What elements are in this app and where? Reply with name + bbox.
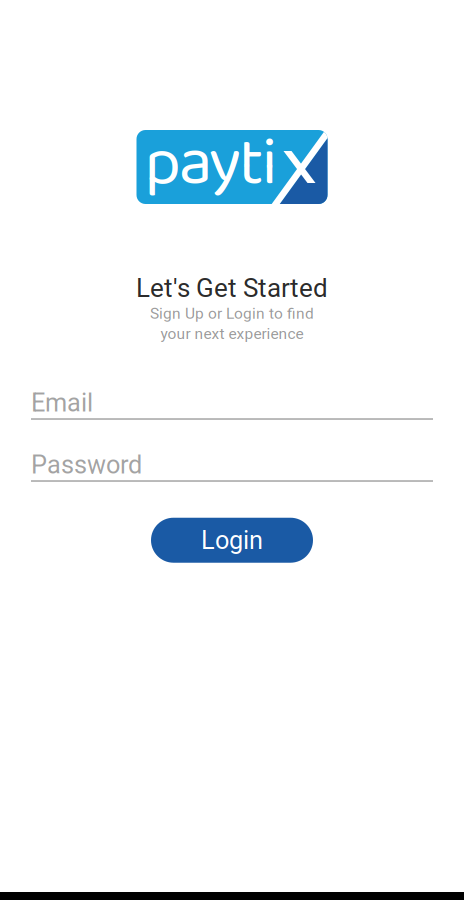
- staticText: Email: [31, 388, 93, 418]
- staticText: Password: [31, 450, 142, 480]
- staticText: Let's Get Started: [136, 273, 328, 303]
- staticText: payti: [144, 111, 277, 217]
- staticText: Sign Up or Login to find: [150, 304, 314, 323]
- button[interactable]: Login: [151, 518, 313, 563]
- staticText: Login: [201, 525, 263, 555]
- staticText: your next experience: [160, 325, 303, 343]
